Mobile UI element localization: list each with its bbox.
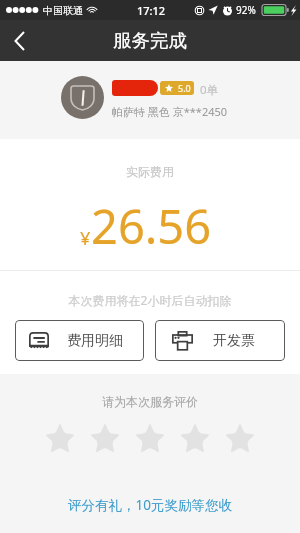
- staticText: 5.0: [178, 82, 191, 94]
- staticText: 本次费用将在2小时后自动扣除: [0, 292, 300, 308]
- staticText: 请为本次服务评价: [102, 394, 198, 409]
- button[interactable]: Driver rating 5.0: [160, 81, 194, 95]
- button[interactable]: Rate star: [135, 423, 165, 453]
- staticText: 服务完成: [113, 29, 187, 52]
- staticText: 评分有礼，10元奖励等您收: [68, 496, 232, 514]
- staticText: 17:12: [137, 3, 166, 18]
- staticText: 0单: [200, 82, 219, 98]
- staticText: 92%: [236, 3, 256, 17]
- button[interactable]: Rate star: [225, 423, 255, 453]
- staticText: ¥: [80, 226, 91, 251]
- button[interactable]: Driver avatar: [61, 76, 104, 119]
- staticText: 中国联通: [43, 4, 83, 17]
- staticText: 实际费用: [0, 164, 300, 179]
- button[interactable]: Back: [0, 21, 40, 61]
- staticText: 26.56: [91, 194, 212, 258]
- button[interactable]: Rate star: [90, 423, 120, 453]
- button[interactable]: 费用明细: [15, 320, 144, 361]
- staticText: 开发票: [213, 332, 255, 350]
- staticText: 帕萨特 黑色 京***2450: [112, 104, 228, 119]
- button[interactable]: 开发票: [155, 320, 285, 361]
- button[interactable]: Rate star: [45, 423, 75, 453]
- button[interactable]: Rate star: [180, 423, 210, 453]
- staticText: 费用明细: [67, 332, 123, 350]
- button[interactable]: 评分有礼，10元奖励等您收: [56, 490, 244, 520]
